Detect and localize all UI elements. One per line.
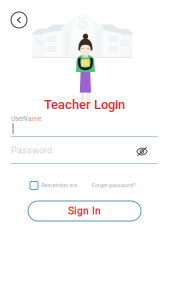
button[interactable]: Show password (133, 143, 150, 159)
staticText: Password (11, 145, 52, 156)
button[interactable]: Forget password? (92, 180, 135, 190)
button[interactable]: Back (7, 8, 31, 32)
button[interactable]: Remember me (30, 180, 77, 190)
staticText: Teacher Login (44, 97, 125, 112)
staticText: Remember me (41, 182, 77, 188)
staticText: Sign In (68, 205, 101, 217)
button[interactable]: Sign In (28, 201, 141, 221)
staticText: UserName (11, 115, 41, 123)
staticText: Forget password? (92, 182, 135, 188)
